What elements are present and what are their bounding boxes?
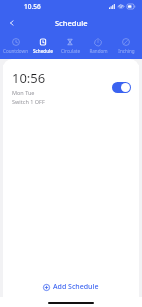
staticText: Circulate (61, 48, 80, 54)
button[interactable]: Random (84, 33, 112, 59)
staticText: Switch 1 OFF (12, 98, 45, 105)
staticText: Mon Tue (12, 89, 35, 96)
staticText: 10:56 (12, 69, 46, 87)
button[interactable]: Add Schedule (3, 277, 139, 297)
staticText: Add Schedule (53, 282, 99, 292)
staticText: Schedule (33, 48, 53, 54)
button[interactable]: Circulate (56, 33, 84, 59)
button[interactable]: Back (4, 15, 20, 31)
staticText: Inching (118, 48, 135, 54)
button[interactable]: Countdown (2, 33, 29, 59)
button[interactable]: Schedule enabled toggle (112, 82, 131, 93)
button[interactable]: Schedule (29, 33, 56, 59)
staticText: Countdown (3, 48, 28, 54)
button[interactable]: Inching (112, 33, 140, 59)
staticText: Random (89, 48, 108, 54)
staticText: Schedule (55, 18, 88, 28)
button[interactable]: 10:56 (3, 65, 139, 109)
staticText: 10.56 (24, 2, 41, 11)
